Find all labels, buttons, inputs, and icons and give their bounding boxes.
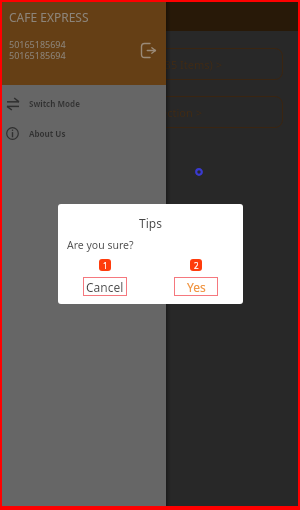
- staticText: 50165185694: [9, 38, 66, 50]
- button[interactable]: Shop By Collection >: [15, 96, 283, 128]
- button[interactable]: Proceed To Cart (35 Items) >: [15, 48, 283, 80]
- staticText: Cancel: [86, 279, 124, 295]
- staticText: Switch Mode: [29, 98, 80, 109]
- staticText: Are you sure?: [67, 238, 134, 252]
- staticText: 1: [103, 260, 108, 271]
- staticText: Tips: [58, 215, 243, 231]
- button[interactable]: Log out: [135, 37, 161, 63]
- button[interactable]: Yes: [174, 277, 218, 296]
- staticText: About Us: [29, 128, 66, 139]
- staticText: Shop By Collection >: [97, 105, 202, 120]
- staticText: Yes: [187, 279, 206, 295]
- staticText: 50165185694: [9, 49, 66, 61]
- staticText: 2: [194, 260, 199, 271]
- button[interactable]: Cancel: [83, 277, 127, 296]
- button[interactable]: Switch Mode: [2, 88, 166, 118]
- staticText: Proceed To Cart (35 Items) >: [77, 57, 222, 72]
- button[interactable]: About Us: [2, 118, 166, 148]
- staticText: CAFE EXPRESS: [9, 9, 89, 25]
